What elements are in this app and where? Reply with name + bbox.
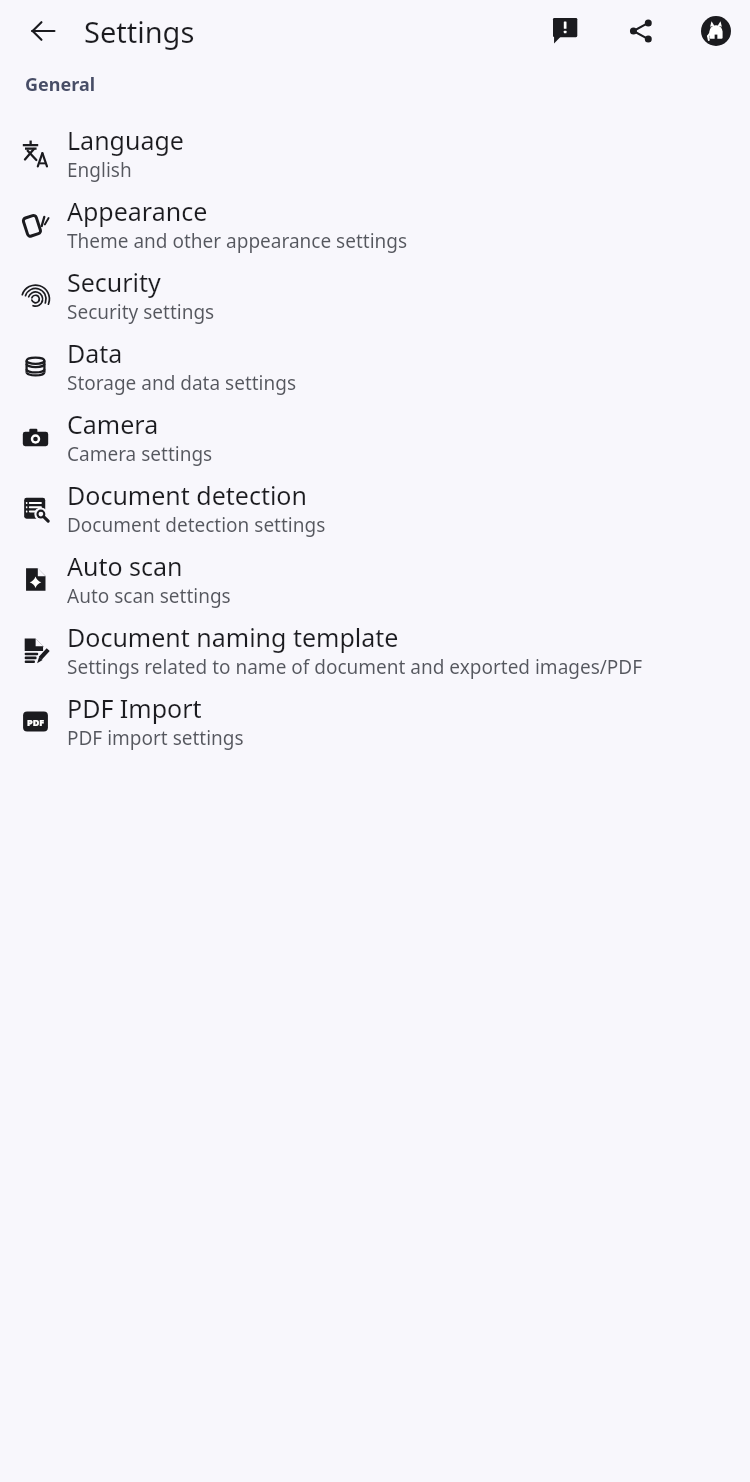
staticText: Security: [67, 265, 161, 299]
button[interactable]: Data: [0, 330, 750, 401]
staticText: Auto scan: [67, 549, 183, 583]
button[interactable]: PDF: [0, 685, 750, 756]
button[interactable]: Language: [0, 117, 750, 188]
button[interactable]: Open GitHub repository: [694, 9, 738, 53]
staticText: Auto scan settings: [67, 583, 231, 609]
staticText: Language: [67, 123, 184, 157]
staticText: Appearance: [67, 194, 208, 228]
button[interactable]: Document detection: [0, 472, 750, 543]
staticText: Data: [67, 336, 123, 370]
staticText: Security settings: [67, 299, 215, 325]
button[interactable]: Appearance: [0, 188, 750, 259]
button[interactable]: Share: [619, 9, 663, 53]
staticText: PDF: [27, 716, 45, 728]
staticText: Document detection: [67, 478, 307, 512]
staticText: Camera settings: [67, 441, 213, 467]
button[interactable]: Camera: [0, 401, 750, 472]
staticText: Camera: [67, 407, 159, 441]
staticText: English: [67, 157, 132, 183]
staticText: Settings related to name of document and…: [67, 654, 643, 680]
staticText: Storage and data settings: [67, 370, 297, 396]
staticText: General: [25, 72, 96, 97]
staticText: PDF Import: [67, 691, 202, 725]
staticText: Document detection settings: [67, 512, 326, 538]
staticText: PDF import settings: [67, 725, 244, 751]
button[interactable]: Document naming template: [0, 614, 750, 685]
staticText: Document naming template: [67, 620, 399, 654]
staticText: Theme and other appearance settings: [67, 228, 408, 254]
button[interactable]: Send feedback: [544, 9, 588, 53]
button[interactable]: Security: [0, 259, 750, 330]
button[interactable]: Auto scan: [0, 543, 750, 614]
button[interactable]: Back: [21, 9, 65, 53]
staticText: Settings: [84, 12, 195, 51]
